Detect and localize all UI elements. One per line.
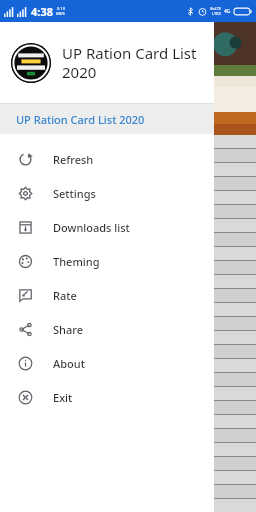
staticText: Settings <box>53 186 96 201</box>
staticText: 0.10 <box>57 6 65 11</box>
staticText: LTE2 <box>212 11 221 16</box>
staticText: बंद करें <box>13 78 26 85</box>
button[interactable]: Share <box>0 312 214 346</box>
staticText: 2621306 <box>2 361 32 371</box>
staticText: 1559572 <box>2 347 32 357</box>
staticText: KB/S <box>56 11 65 16</box>
staticText: UP Ration Card List 2020 <box>62 43 206 82</box>
staticText: 1257614 <box>2 193 32 203</box>
staticText: 2604721 <box>2 151 32 161</box>
button[interactable]: Settings <box>0 176 214 210</box>
staticText: 2966089 <box>2 333 32 343</box>
button[interactable]: About <box>0 346 214 380</box>
button[interactable]: UP Ration Card List 2020 <box>0 104 214 134</box>
button[interactable]: Refresh <box>0 142 214 176</box>
button[interactable]: Rate <box>0 278 214 312</box>
staticText: 1630480 <box>2 221 32 231</box>
staticText: 2:41 AM तक <box>2 102 35 110</box>
button[interactable]: Exit <box>0 380 214 414</box>
staticText: Refresh <box>53 152 94 167</box>
staticText: 1262316 <box>2 403 32 413</box>
staticText: 2352094 <box>2 263 32 273</box>
staticText: 859922 <box>2 249 32 259</box>
button[interactable]: Downloads list <box>0 210 214 244</box>
button[interactable]: Theming <box>0 244 214 278</box>
staticText: Exit <box>53 390 73 405</box>
staticText: MANAGEMENT <box>2 66 54 76</box>
staticText: Share <box>53 322 83 337</box>
staticText: 4:38 <box>31 4 53 19</box>
staticText: 2392686 <box>2 389 32 399</box>
staticText: 1194460 <box>2 179 32 189</box>
staticText: About <box>53 356 85 371</box>
staticText: VoLTE <box>210 6 222 11</box>
staticText: 1377179 <box>2 291 32 301</box>
staticText: Downloads list <box>53 220 130 235</box>
staticText: Theming <box>53 254 100 269</box>
staticText: 4G <box>224 8 231 15</box>
staticText: 2258315 <box>2 319 32 329</box>
staticText: UP Ration Card List 2020 <box>16 112 145 127</box>
staticText: 1582464 <box>2 165 32 175</box>
staticText: Rate <box>53 288 77 303</box>
